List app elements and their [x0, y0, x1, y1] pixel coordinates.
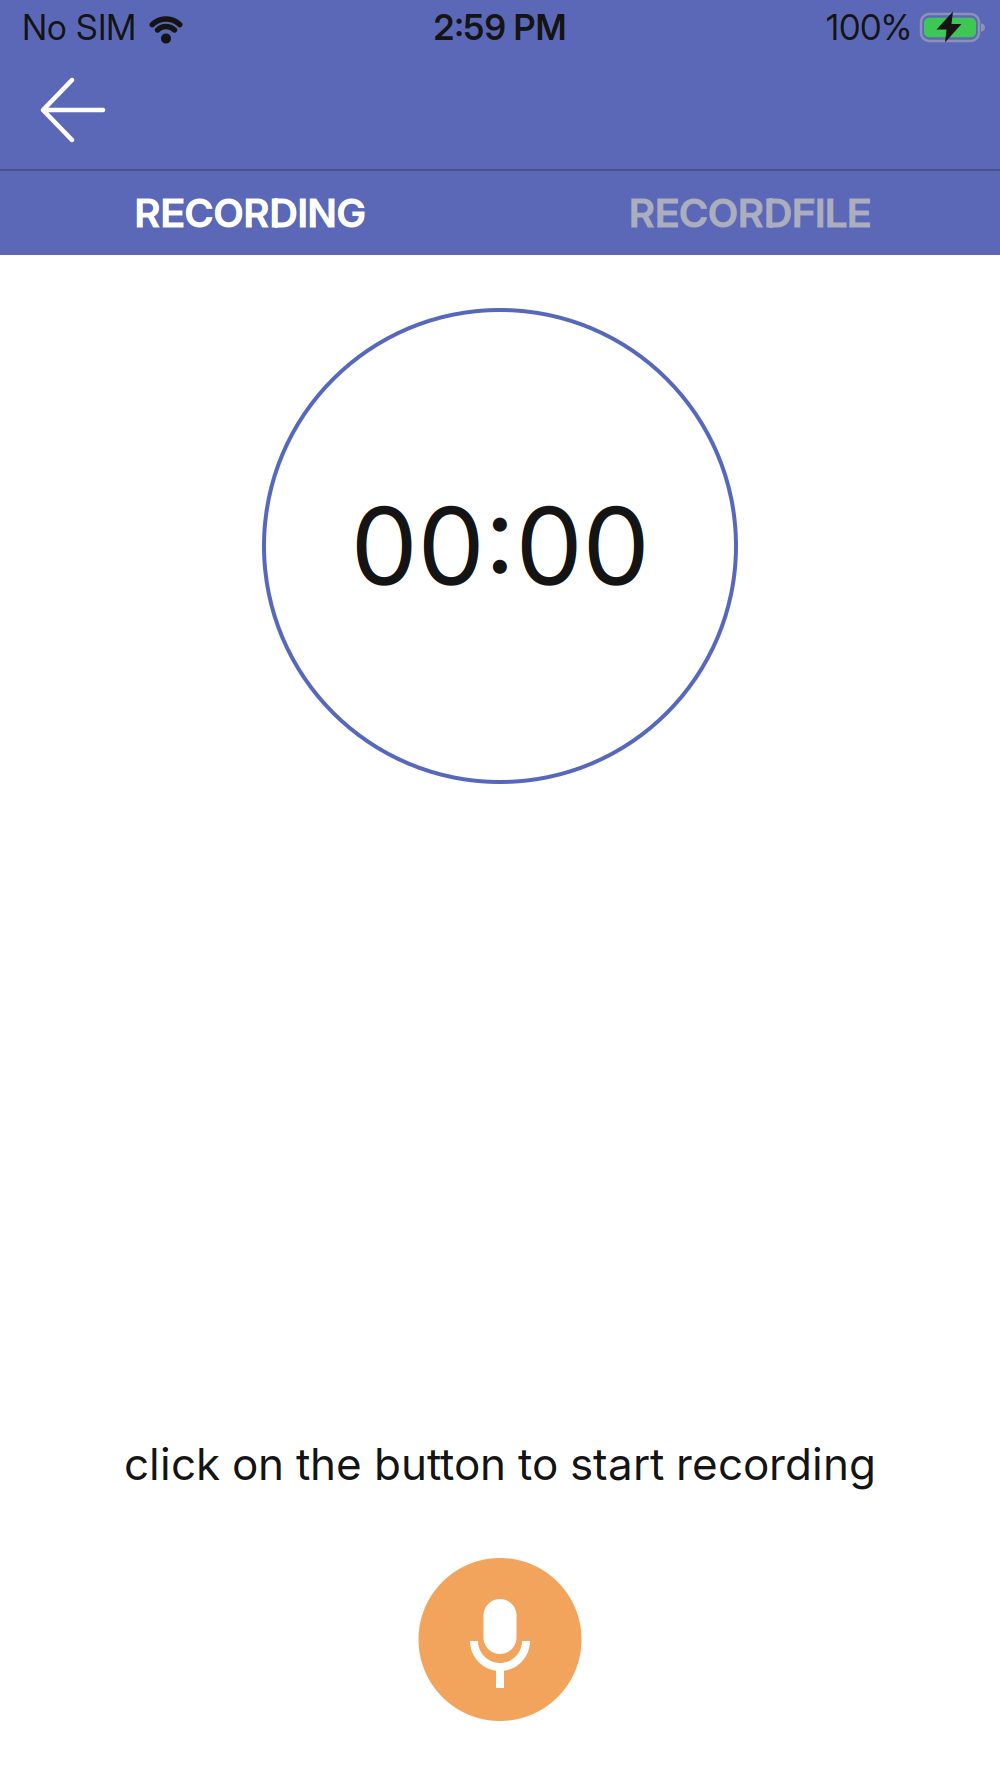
- button[interactable]: RECORDING: [0, 171, 500, 255]
- button[interactable]: Back: [0, 55, 140, 169]
- staticText: No SIM: [22, 7, 136, 48]
- staticText: 100%: [826, 7, 912, 48]
- button[interactable]: Start recording: [418, 1558, 581, 1721]
- button[interactable]: RECORDFILE: [500, 171, 1000, 255]
- staticText: click on the button to start recording: [124, 1438, 876, 1490]
- staticText: RECORDING: [134, 189, 365, 237]
- staticText: RECORDFILE: [629, 189, 871, 237]
- staticText: 2:59 PM: [433, 7, 566, 48]
- staticText: 00:00: [350, 483, 649, 609]
